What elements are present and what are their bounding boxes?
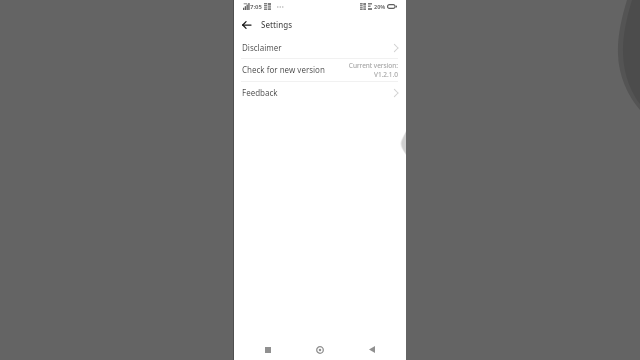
staticText: Settings <box>261 19 293 30</box>
staticText: Check for new version <box>242 64 325 75</box>
staticText: 20% <box>374 3 386 10</box>
button[interactable]: Feedback <box>234 81 406 104</box>
button[interactable]: Back <box>237 16 255 34</box>
button[interactable]: Disclaimer <box>234 36 406 59</box>
staticText: Current version: V1.2.1.0 <box>348 61 398 79</box>
button[interactable]: Back <box>354 339 390 360</box>
staticText: Disclaimer <box>242 42 282 53</box>
button[interactable]: Check for new version <box>234 58 406 81</box>
staticText: 7:05 <box>250 3 262 11</box>
staticText: Feedback <box>242 87 278 98</box>
button[interactable]: Recents <box>250 339 286 360</box>
button[interactable]: Home <box>302 339 338 360</box>
